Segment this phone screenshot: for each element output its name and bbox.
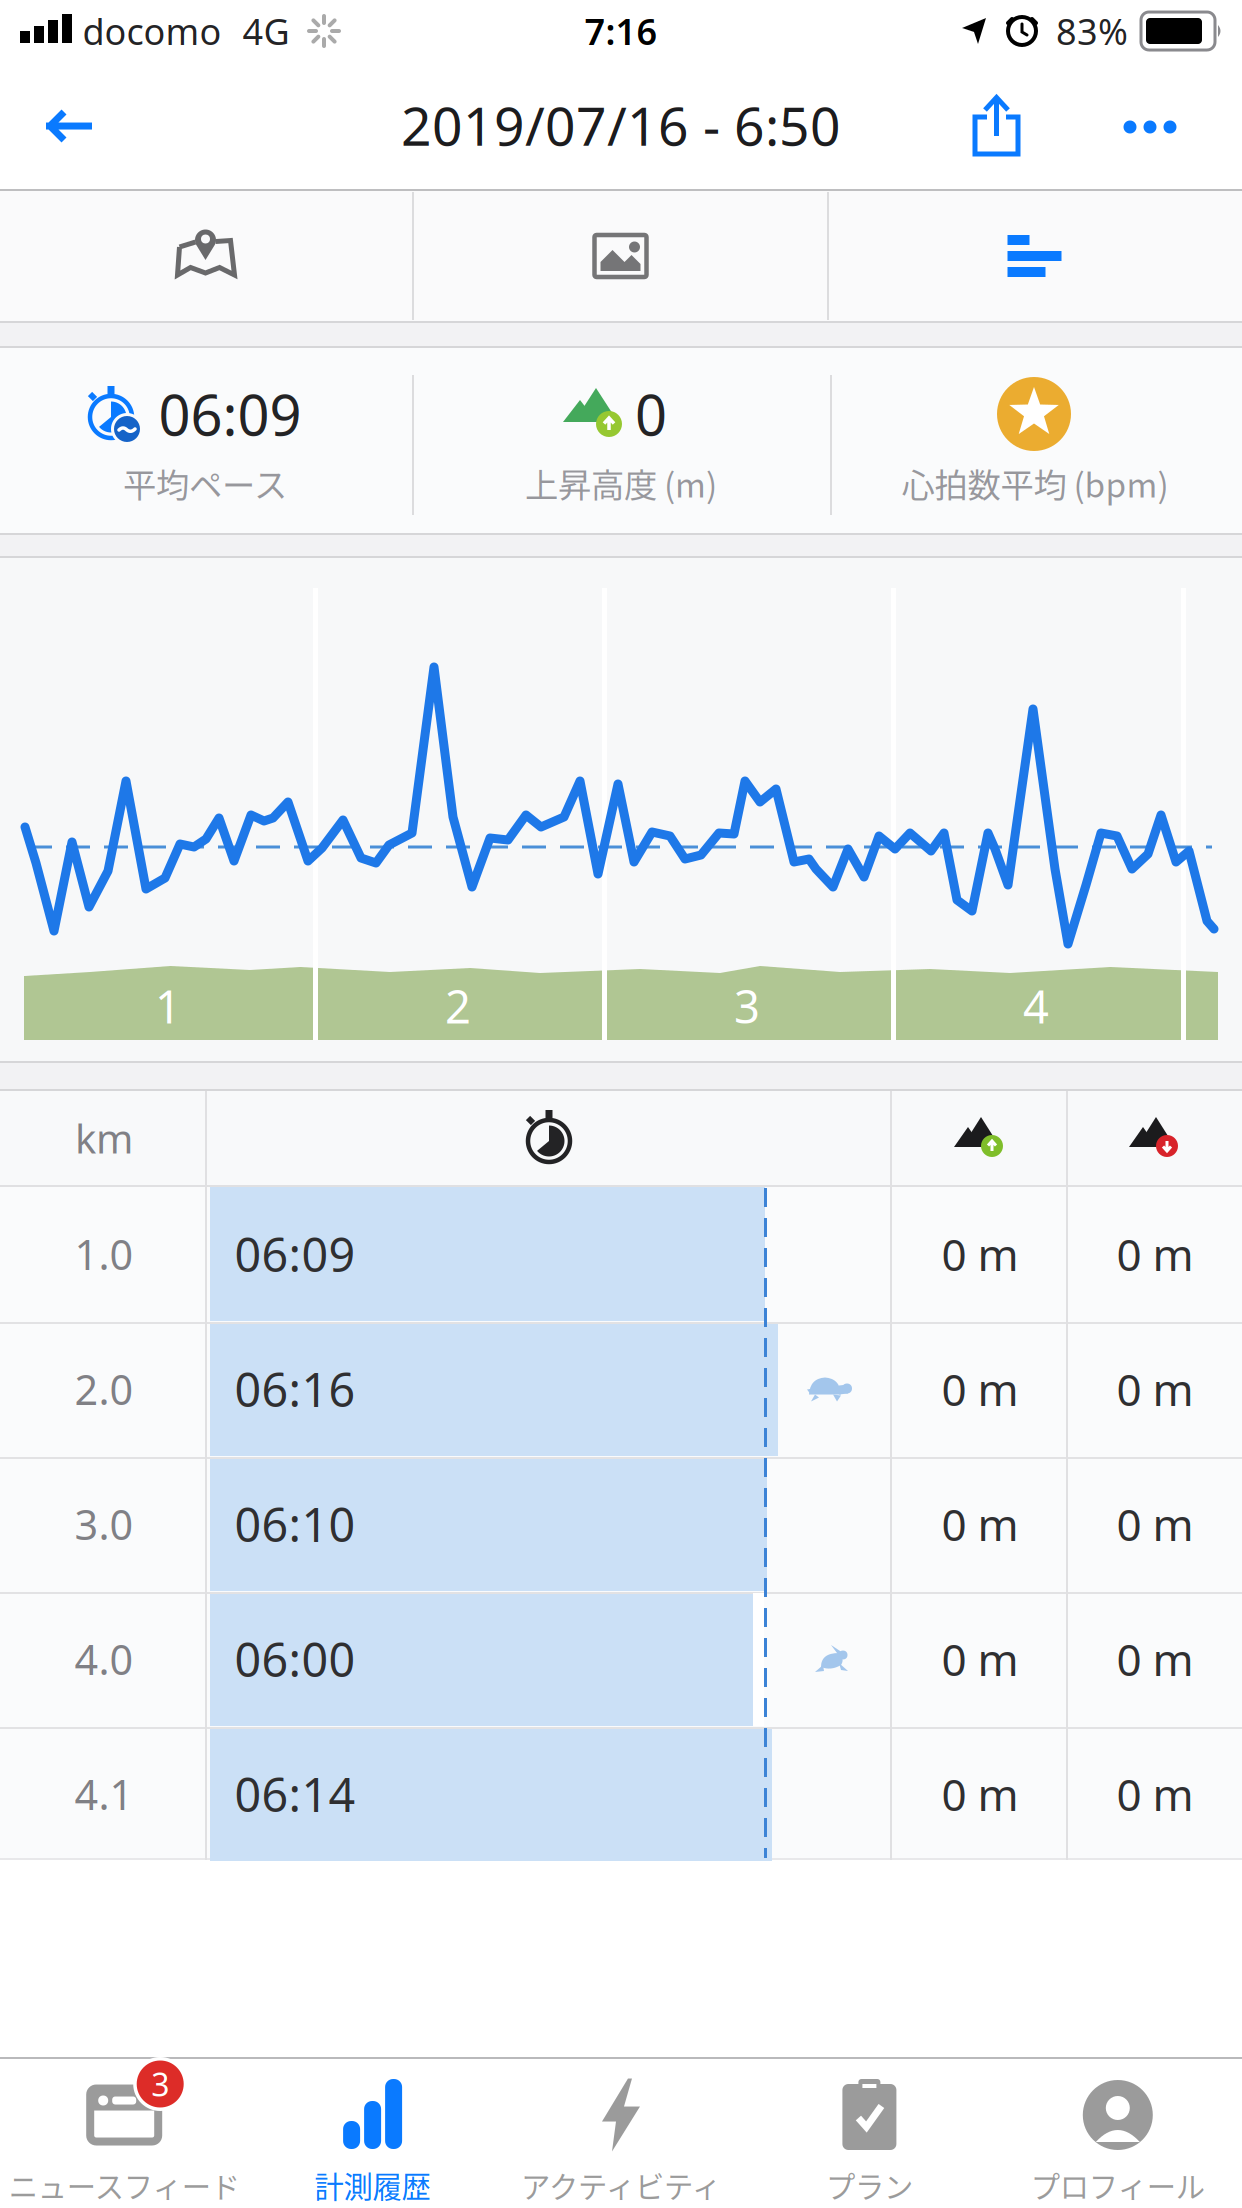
button[interactable]: Photos xyxy=(414,191,827,321)
staticText: 上昇高度 (m) xyxy=(525,459,717,507)
staticText: 3 xyxy=(734,976,760,1036)
staticText: 0 xyxy=(635,377,667,451)
button[interactable]: アクティビティ xyxy=(497,2059,745,2208)
staticText: docomo xyxy=(82,7,221,55)
staticText: 2 xyxy=(445,976,471,1036)
staticText: 2.0 xyxy=(74,1362,133,1416)
button[interactable]: Map xyxy=(0,191,413,321)
staticText: 4 xyxy=(1023,976,1049,1036)
staticText: 4G xyxy=(242,7,289,55)
staticText: 1 xyxy=(155,976,181,1036)
staticText: 0 m xyxy=(941,1360,1018,1418)
staticText: 06:14 xyxy=(234,1763,355,1825)
staticText: 0 m xyxy=(1116,1765,1193,1823)
staticText: 4.0 xyxy=(74,1632,133,1686)
staticText: 06:10 xyxy=(234,1493,355,1555)
staticText: 計測履歴 xyxy=(315,2164,431,2206)
staticText: 0 m xyxy=(941,1225,1018,1283)
staticText: プロフィール xyxy=(1031,2164,1205,2206)
staticText: 0 m xyxy=(1116,1360,1193,1418)
button[interactable]: 計測履歴 xyxy=(248,2059,497,2208)
staticText: 0 m xyxy=(1116,1495,1193,1553)
staticText: 06:09 xyxy=(158,377,301,451)
button[interactable]: More xyxy=(1108,79,1192,175)
staticText: 7:16 xyxy=(584,7,657,55)
button[interactable]: Share xyxy=(935,79,1059,175)
button[interactable]: プラン xyxy=(745,2059,994,2208)
button[interactable]: 3 xyxy=(0,2059,248,2208)
staticText: 83% xyxy=(1056,7,1128,55)
staticText: アクティビティ xyxy=(521,2164,721,2206)
staticText: 0 m xyxy=(941,1765,1018,1823)
staticText: 06:16 xyxy=(234,1358,355,1420)
staticText: 4.1 xyxy=(74,1767,133,1821)
staticText: 0 m xyxy=(1116,1225,1193,1283)
staticText: 3 xyxy=(151,2063,169,2105)
staticText: 0 m xyxy=(941,1495,1018,1553)
staticText: 0 m xyxy=(941,1630,1018,1688)
staticText: km xyxy=(75,1111,133,1164)
staticText: 平均ペース xyxy=(123,459,287,507)
staticText: 心拍数平均 (bpm) xyxy=(901,459,1168,507)
button[interactable]: Statistics xyxy=(828,191,1241,321)
staticText: ニュースフィード xyxy=(9,2164,240,2206)
staticText: 2019/07/16 - 6:50 xyxy=(401,90,841,160)
staticText: プラン xyxy=(826,2164,913,2206)
staticText: 0 m xyxy=(1116,1630,1193,1688)
staticText: 1.0 xyxy=(74,1227,133,1281)
button[interactable]: プロフィール xyxy=(994,2059,1242,2208)
staticText: 3.0 xyxy=(74,1497,133,1551)
button[interactable]: Back xyxy=(0,60,130,190)
staticText: 06:09 xyxy=(234,1223,355,1285)
staticText: 06:00 xyxy=(234,1628,355,1690)
